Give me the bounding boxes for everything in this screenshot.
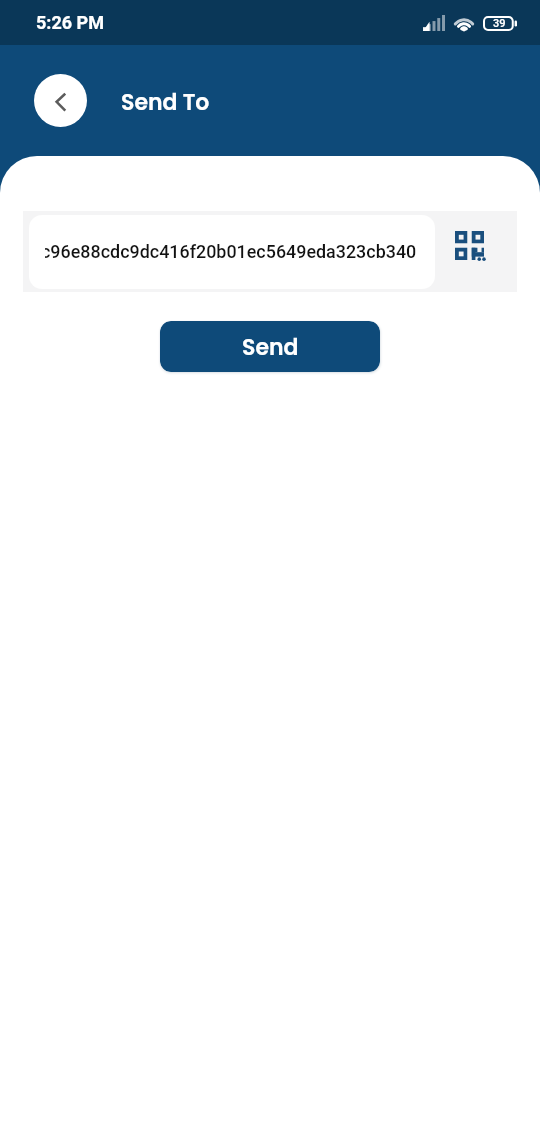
staticText: 39 [493, 17, 506, 30]
button[interactable]: c96e88cdc9dc416f20b01ec5649eda323cb340 [29, 215, 435, 289]
button[interactable]: Scan QR code [435, 211, 517, 292]
staticText: c96e88cdc9dc416f20b01ec5649eda323cb340 [45, 242, 417, 262]
staticText: Send To [121, 87, 210, 118]
button[interactable]: Send [160, 321, 380, 372]
button[interactable]: Back [34, 74, 87, 127]
staticText: 5:26 PM [36, 12, 104, 33]
staticText: Send [242, 332, 299, 363]
